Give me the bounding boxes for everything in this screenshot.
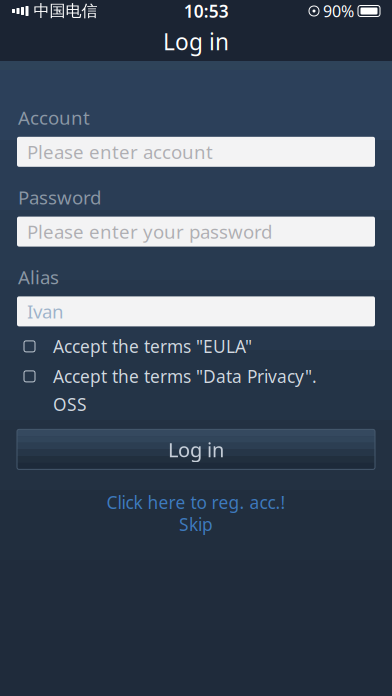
staticText: Account (18, 105, 90, 130)
staticText: Please enter account (27, 139, 213, 164)
staticText: Click here to reg. acc.! (106, 491, 285, 514)
staticText: Alias (18, 265, 59, 289)
button[interactable]: Accept the terms "Data Privacy". (17, 361, 375, 391)
staticText: Please enter your password (27, 219, 272, 244)
button[interactable]: Please enter your password (17, 217, 375, 247)
staticText: OSS (53, 393, 87, 416)
staticText: 中国电信 (33, 1, 97, 21)
staticText: Accept the terms "Data Privacy". (53, 365, 317, 388)
button[interactable]: Ivan (17, 296, 375, 326)
button[interactable]: OSS (17, 391, 375, 417)
staticText: Accept the terms "EULA" (53, 335, 252, 358)
staticText: Ivan (27, 299, 64, 324)
staticText: Password (18, 185, 101, 210)
staticText: Log in (163, 26, 229, 56)
button[interactable]: Accept the terms "EULA" (17, 331, 375, 361)
staticText: 90% (323, 0, 354, 22)
staticText: Skip (179, 513, 213, 536)
button[interactable]: Log in (17, 429, 375, 469)
staticText: 10:53 (184, 0, 229, 22)
staticText: Log in (168, 436, 224, 463)
button[interactable]: Click here to reg. acc.! (17, 491, 375, 513)
button[interactable]: Skip (17, 513, 375, 535)
button[interactable]: Please enter account (17, 137, 375, 167)
